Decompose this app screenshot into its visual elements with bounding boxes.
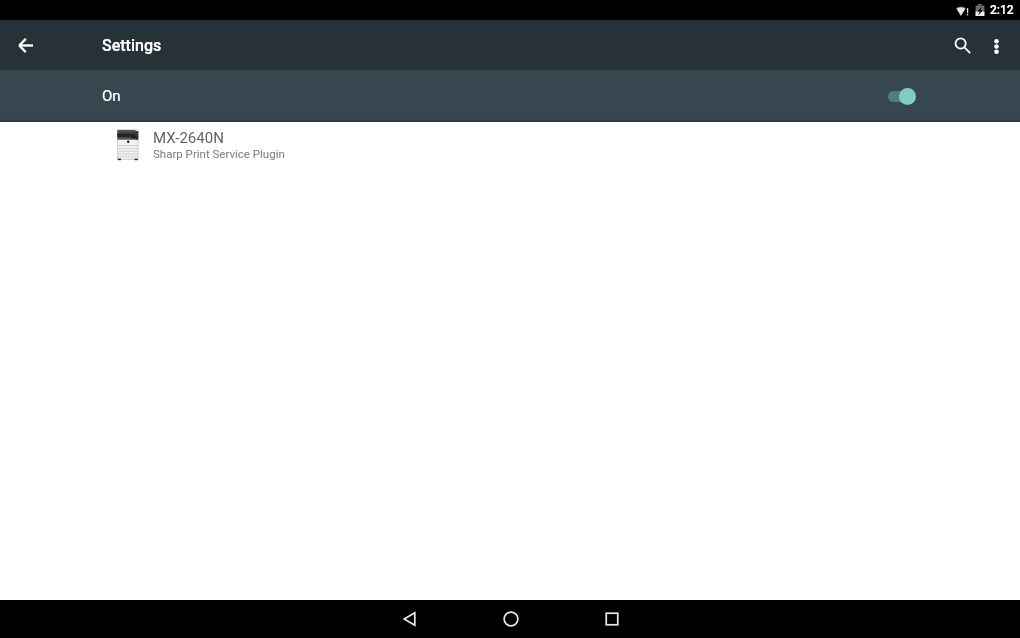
- button[interactable]: Search: [932, 20, 972, 70]
- button[interactable]: Home: [460, 600, 561, 638]
- staticText: MX-2640N: [153, 129, 224, 147]
- staticText: Sharp Print Service Plugin: [153, 147, 285, 160]
- button[interactable]: MX-2640N: [0, 122, 1020, 170]
- staticText: On: [102, 87, 121, 105]
- button[interactable]: On: [0, 70, 1020, 122]
- button[interactable]: More options: [972, 20, 1020, 70]
- button[interactable]: Navigate up: [1, 21, 49, 69]
- staticText: Settings: [102, 36, 162, 55]
- button[interactable]: Back: [359, 600, 460, 638]
- button[interactable]: Recent apps: [561, 600, 662, 638]
- staticText: 2:12: [990, 3, 1014, 17]
